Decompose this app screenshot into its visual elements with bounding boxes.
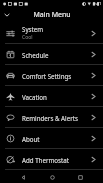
staticText: Main Menu (33, 10, 71, 20)
staticText: Schedule (22, 51, 49, 59)
staticText: About (22, 135, 40, 143)
button[interactable]: Recent apps (74, 171, 86, 183)
button[interactable]: Schedule (0, 44, 103, 65)
button[interactable]: Reminders & Alerts (0, 107, 103, 128)
button[interactable]: Comfort Settings (0, 65, 103, 86)
button[interactable]: Back (17, 171, 29, 183)
button[interactable]: Add Thermostat (0, 149, 103, 170)
button[interactable]: System (0, 22, 103, 44)
staticText: Vacation (22, 93, 47, 101)
staticText: Comfort Settings (22, 72, 72, 80)
button[interactable]: Vacation (0, 86, 103, 107)
staticText: Add Thermostat (22, 156, 69, 164)
staticText: Reminders & Alerts (22, 114, 78, 122)
staticText: Cool (22, 34, 33, 41)
staticText: 9:41 (93, 1, 102, 7)
button[interactable]: Collapse (0, 8, 14, 22)
button[interactable]: Home (46, 171, 58, 183)
button[interactable]: About (0, 128, 103, 149)
staticText: System (22, 25, 44, 33)
